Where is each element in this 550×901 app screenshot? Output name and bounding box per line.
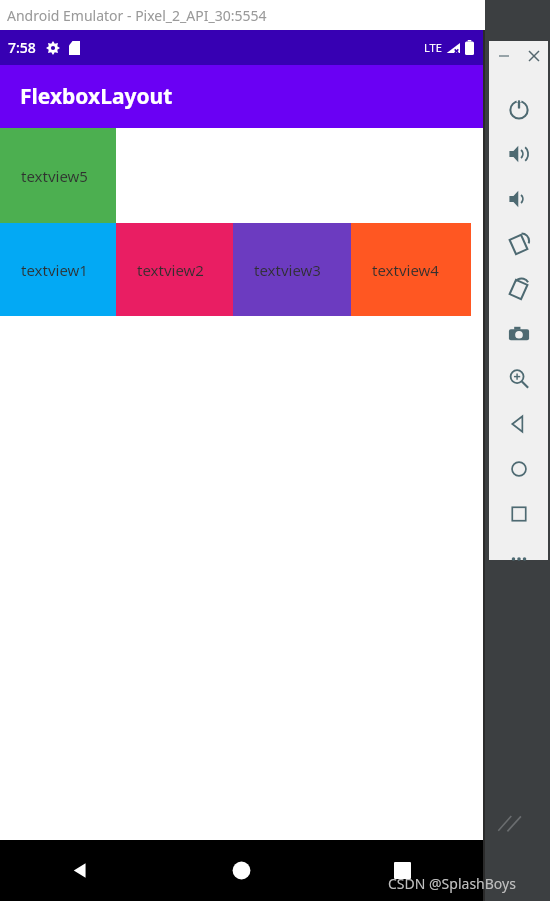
button[interactable]: Back — [489, 401, 548, 446]
staticText: FlexboxLayout — [20, 82, 173, 111]
button[interactable]: Rotate right — [489, 266, 548, 311]
button[interactable]: Close — [519, 41, 548, 71]
button[interactable]: Power — [489, 86, 548, 131]
button[interactable]: Recents — [489, 491, 548, 536]
staticText: textview5 — [21, 166, 88, 186]
button[interactable]: textview1 — [0, 223, 116, 316]
button[interactable]: Zoom — [489, 356, 548, 401]
button[interactable]: textview2 — [116, 223, 233, 316]
button[interactable]: Home — [489, 446, 548, 491]
staticText: textview1 — [21, 260, 88, 280]
button[interactable]: Back — [0, 840, 161, 901]
button[interactable]: Home — [161, 840, 322, 901]
staticText: 7:58 — [8, 38, 36, 57]
staticText: textview2 — [137, 260, 204, 280]
staticText: Android Emulator - Pixel_2_API_30:5554 — [7, 6, 267, 25]
staticText: textview3 — [254, 260, 321, 280]
button[interactable]: Minimize — [489, 41, 519, 71]
button[interactable]: Recent apps — [322, 840, 483, 901]
button[interactable]: Volume down — [489, 176, 548, 221]
button[interactable]: textview4 — [351, 223, 471, 316]
button[interactable]: textview5 — [0, 128, 116, 223]
button[interactable]: textview3 — [233, 223, 351, 316]
staticText: CSDN @SplashBoys — [388, 874, 516, 893]
button[interactable]: Screenshot — [489, 311, 548, 356]
button[interactable]: Volume up — [489, 131, 548, 176]
staticText: textview4 — [372, 260, 439, 280]
button[interactable]: Rotate left — [489, 221, 548, 266]
button[interactable]: More — [489, 536, 548, 581]
staticText: LTE — [424, 40, 442, 55]
